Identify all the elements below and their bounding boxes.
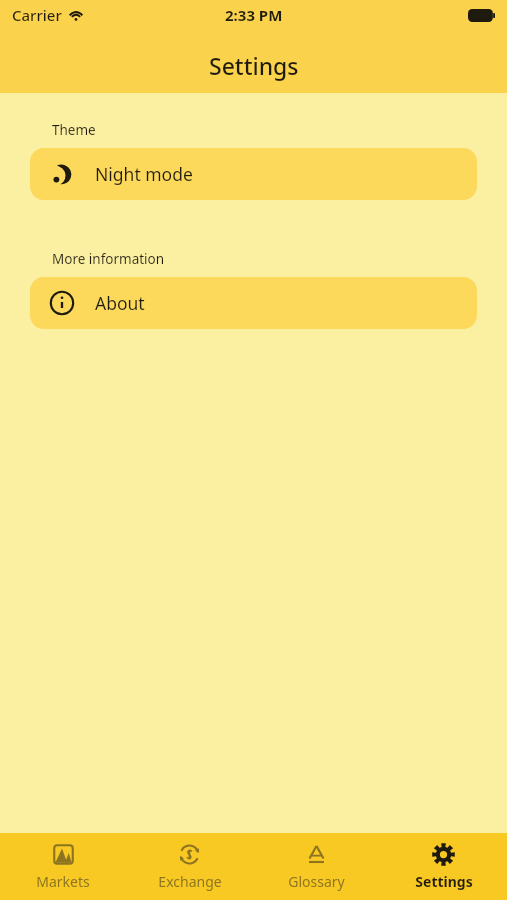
staticText: 2:33 PM (225, 5, 283, 25)
staticText: Settings (415, 872, 473, 891)
button[interactable]: Markets (0, 833, 126, 900)
staticText: More information (52, 250, 165, 268)
staticText: Theme (52, 121, 96, 139)
button[interactable]: Settings (380, 833, 507, 900)
staticText: Glossary (288, 872, 345, 891)
staticText: Markets (36, 872, 90, 891)
staticText: Exchange (158, 872, 222, 891)
staticText: Carrier (12, 5, 62, 25)
button[interactable]: About (30, 277, 477, 329)
button[interactable]: Exchange (126, 833, 253, 900)
staticText: Settings (209, 50, 299, 81)
staticText: Night mode (95, 162, 193, 186)
button[interactable]: Night mode (30, 148, 477, 200)
staticText: About (95, 291, 145, 315)
button[interactable]: Glossary (253, 833, 380, 900)
